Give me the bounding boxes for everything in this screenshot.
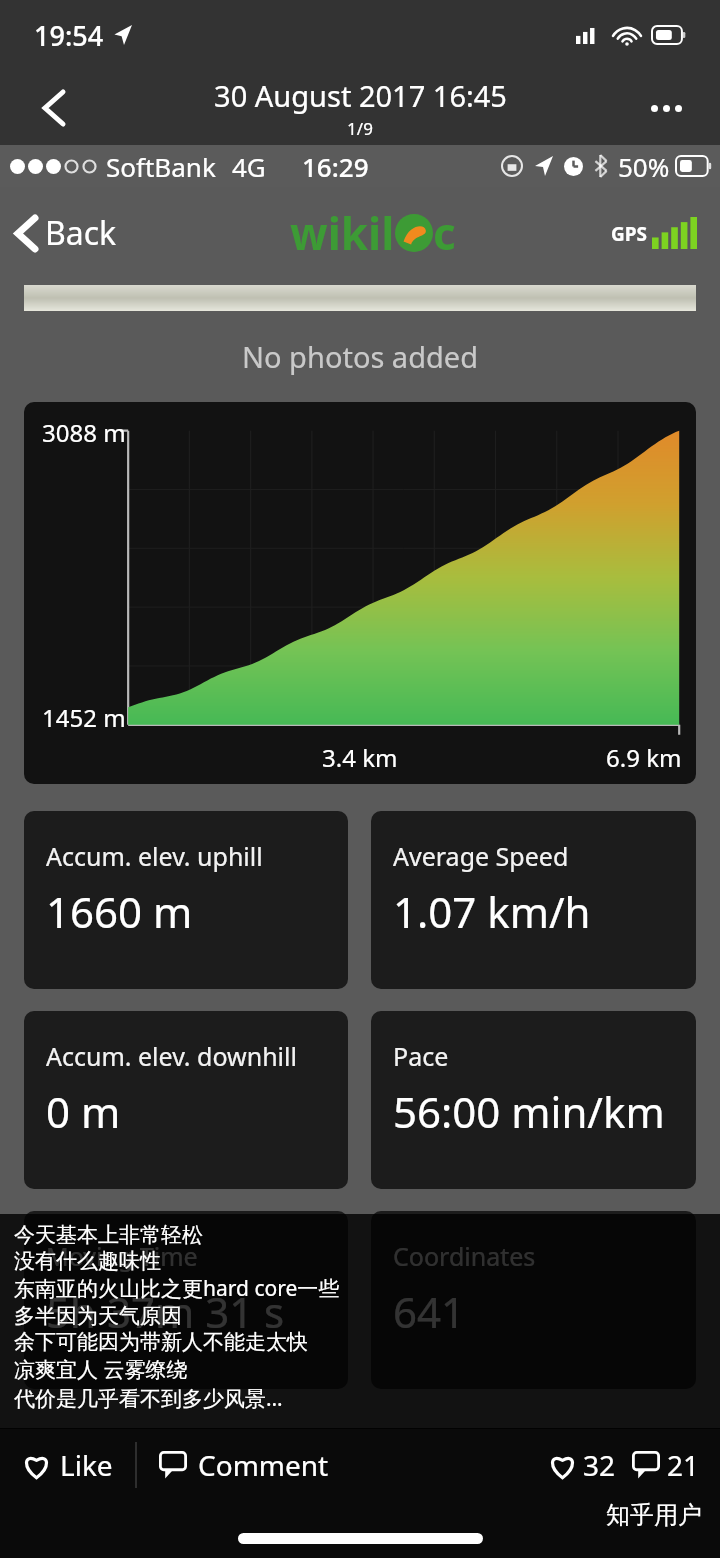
button[interactable]: Like [0, 1432, 135, 1498]
staticText: c [433, 203, 456, 263]
staticText: 5h 37m 31 s [46, 1283, 285, 1340]
staticText: 3088 m [42, 416, 126, 449]
button[interactable]: Back [0, 203, 135, 263]
staticText: 东南亚的火山比之更hard core一些 [14, 1274, 340, 1303]
button[interactable]: Accum. elev. uphill [24, 811, 348, 989]
staticText: 641 [393, 1283, 466, 1340]
staticText: wikil [290, 203, 395, 263]
staticText: 1452 m [42, 701, 126, 734]
staticText: Comment [198, 1446, 329, 1484]
staticText: No photos added [0, 337, 720, 376]
staticText: Like [60, 1446, 113, 1484]
button[interactable]: Pace [371, 1011, 696, 1189]
staticText: 1/9 [347, 117, 373, 140]
staticText: GPS [611, 221, 648, 247]
staticText: 没有什么趣味性 [14, 1248, 161, 1274]
staticText: Moving Time [46, 1239, 198, 1273]
button[interactable]: Accum. elev. downhill [24, 1011, 348, 1189]
staticText: 1.07 km/h [393, 883, 591, 940]
button[interactable]: Comment [137, 1432, 351, 1498]
staticText: 16:29 [302, 149, 369, 184]
staticText: Accum. elev. uphill [46, 839, 263, 873]
staticText: Average Speed [393, 839, 569, 873]
staticText: Back [45, 211, 117, 255]
button[interactable]: 3088 m [24, 402, 696, 784]
staticText: 19:54 [34, 17, 104, 54]
staticText: 30 August 2017 16:45 [214, 76, 507, 115]
button[interactable]: Moving Time [24, 1211, 348, 1389]
staticText: 余下可能因为带新人不能走太快 [14, 1329, 308, 1355]
button[interactable]: Back [26, 80, 82, 136]
staticText: 今天基本上非常轻松 [14, 1222, 203, 1248]
staticText: 多半因为天气原因 [14, 1303, 182, 1329]
staticText: Accum. elev. downhill [46, 1039, 297, 1073]
staticText: SoftBank [106, 149, 216, 184]
staticText: Coordinates [393, 1239, 536, 1273]
staticText: 凉爽宜人 云雾缭绕 [14, 1355, 188, 1384]
staticText: 21 [667, 1446, 700, 1484]
staticText: 50% [618, 149, 670, 184]
staticText: 4G [232, 149, 266, 184]
staticText: Pace [393, 1039, 449, 1073]
staticText: 6.9 km [606, 741, 682, 774]
staticText: 32 [583, 1446, 616, 1484]
button[interactable]: Average Speed [371, 811, 696, 989]
staticText: 1660 m [46, 883, 193, 940]
button[interactable]: More options [638, 80, 694, 136]
staticText: 56:00 min/km [393, 1083, 665, 1140]
button[interactable]: Coordinates [371, 1211, 696, 1389]
button[interactable]: 32 [538, 1432, 720, 1498]
staticText: 3.4 km [322, 741, 398, 774]
staticText: 0 m [46, 1083, 121, 1140]
staticText: 知乎用户 [606, 1500, 702, 1530]
staticText: 代价是几乎看不到多少风景… [14, 1384, 283, 1413]
